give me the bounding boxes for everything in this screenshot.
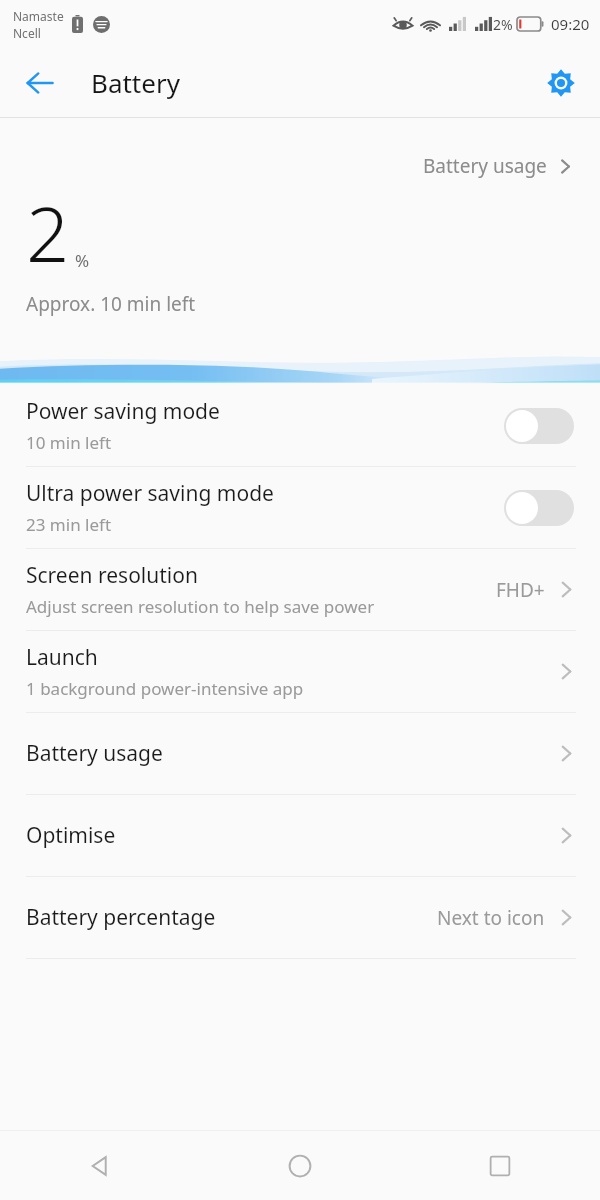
staticText: % [75,249,90,272]
staticText: Battery usage [26,739,163,768]
button[interactable]: Recent apps [400,1131,600,1200]
button[interactable]: Back [0,1131,200,1200]
staticText: Next to icon [437,905,545,931]
staticText: Battery usage [423,153,547,179]
staticText: Battery [91,65,180,100]
staticText: Ncell [13,25,41,41]
staticText: Approx. 10 min left [26,291,196,317]
button[interactable]: Back [14,57,66,109]
button[interactable]: Toggle [504,490,574,526]
staticText: 10 min left [26,431,112,454]
staticText: 2% [493,15,513,34]
staticText: 1 background power-intensive app [26,677,304,700]
staticText: Ultra power saving mode [26,479,274,508]
staticText: 09:20 [551,14,590,34]
staticText: Launch [26,643,98,672]
staticText: FHD+ [496,577,545,603]
button[interactable]: Toggle [504,408,574,444]
staticText: Power saving mode [26,397,220,426]
button[interactable]: Ultra power saving mode [0,467,600,548]
button[interactable]: Optimise [0,795,600,876]
staticText: 2 [26,181,70,285]
staticText: 23 min left [26,513,112,536]
staticText: Adjust screen resolution to help save po… [26,595,375,618]
staticText: Screen resolution [26,561,198,590]
button[interactable]: Launch [0,631,600,712]
button[interactable]: Home [200,1131,400,1200]
button[interactable]: Battery percentage [0,877,600,958]
button[interactable]: Battery usage [419,149,578,183]
staticText: Battery percentage [26,903,216,932]
button[interactable]: Battery usage [0,713,600,794]
staticText: Optimise [26,821,116,850]
staticText: Namaste [13,8,64,24]
button[interactable]: Screen resolution [0,549,600,630]
button[interactable]: Settings [536,58,586,108]
button[interactable]: Power saving mode [0,385,600,466]
